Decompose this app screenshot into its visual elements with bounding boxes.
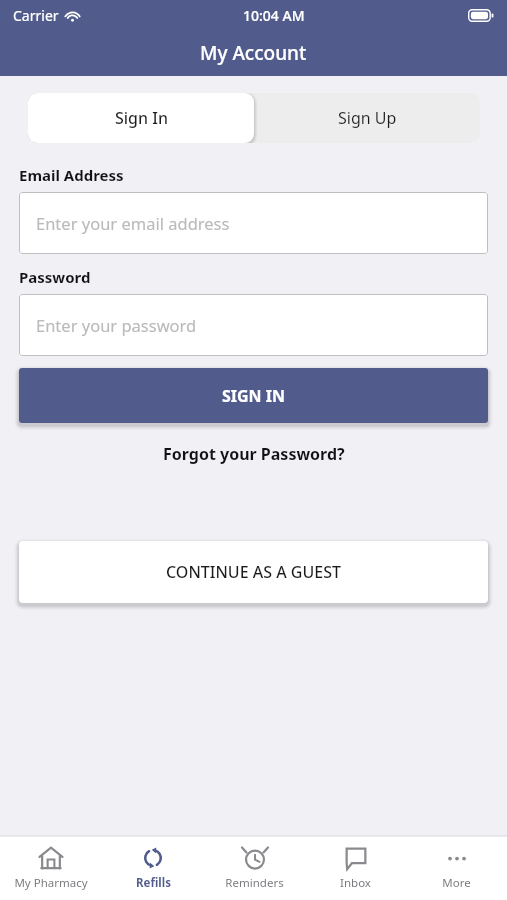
button[interactable]: Forgot your Password? — [19, 443, 488, 465]
button[interactable]: Inbox — [305, 836, 406, 900]
button[interactable]: Reminders — [204, 836, 305, 900]
staticText: Carrier — [13, 6, 59, 25]
button[interactable]: My Pharmacy — [0, 836, 102, 900]
button[interactable]: CONTINUE AS A GUEST — [19, 541, 488, 603]
staticText: Enter your email address — [36, 212, 230, 234]
staticText: Password — [19, 267, 91, 287]
staticText: SIGN IN — [222, 385, 286, 407]
staticText: My Account — [200, 40, 307, 66]
button[interactable]: SIGN IN — [19, 368, 488, 423]
staticText: Email Address — [19, 165, 124, 185]
button[interactable]: Sign In — [28, 93, 254, 143]
button[interactable]: More — [406, 836, 507, 900]
staticText: Inbox — [340, 875, 371, 891]
staticText: 10:04 AM — [243, 6, 305, 25]
staticText: CONTINUE AS A GUEST — [166, 561, 341, 583]
button[interactable]: Sign Up — [254, 93, 480, 143]
staticText: Sign Up — [338, 107, 397, 129]
staticText: Enter your password — [36, 314, 197, 336]
button[interactable]: Enter your email address — [19, 192, 488, 254]
button[interactable]: Refills — [102, 836, 204, 900]
staticText: My Pharmacy — [14, 875, 88, 891]
button[interactable]: Enter your password — [19, 294, 488, 356]
staticText: More — [442, 875, 471, 891]
staticText: Reminders — [225, 875, 284, 891]
staticText: Sign In — [115, 107, 168, 129]
staticText: Forgot your Password? — [163, 443, 345, 465]
staticText: Refills — [136, 875, 171, 891]
